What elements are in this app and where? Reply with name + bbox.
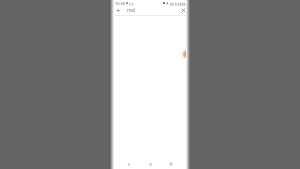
staticText: 10:30 xyxy=(115,1,125,6)
button[interactable]: Back xyxy=(114,6,123,15)
staticText: ▮▮ ▮ ▮▮▮▮ xyxy=(170,1,186,6)
button[interactable]: Back xyxy=(123,159,133,169)
staticText: ▮ ▮ xyxy=(129,1,134,6)
button[interactable]: red xyxy=(124,6,176,15)
button[interactable]: Recent apps xyxy=(166,159,176,169)
button[interactable]: Clear xyxy=(179,6,188,15)
button[interactable]: Home xyxy=(145,159,155,169)
staticText: red xyxy=(127,7,135,14)
